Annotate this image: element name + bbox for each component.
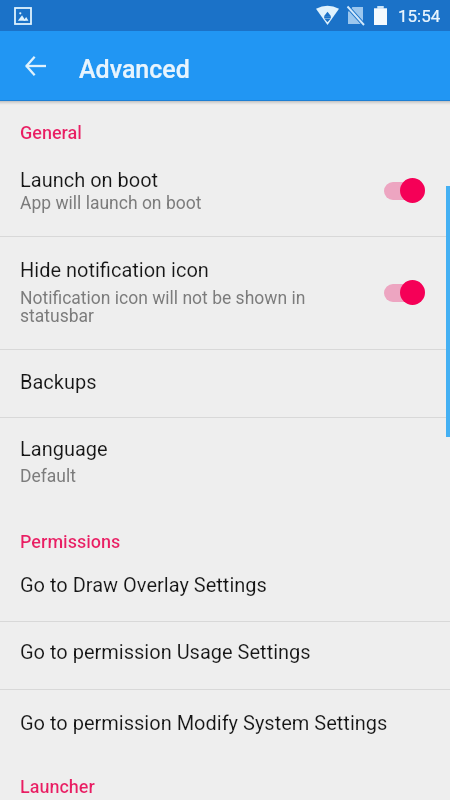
button[interactable]: Toggle <box>382 176 428 206</box>
staticText: Go to permission Usage Settings <box>20 640 311 663</box>
staticText: Backups <box>20 370 97 393</box>
button[interactable]: Toggle <box>382 278 428 308</box>
staticText: Go to permission Modify System Settings <box>20 711 388 734</box>
staticText: Permissions <box>20 531 121 552</box>
staticText: Launcher <box>20 776 95 797</box>
staticText: General <box>20 122 82 143</box>
button[interactable]: Go to permission Modify System Settings <box>0 690 450 757</box>
button[interactable]: Back <box>13 44 57 88</box>
staticText: 15:54 <box>398 6 441 26</box>
staticText: Hide notification icon <box>20 258 209 281</box>
staticText: Advanced <box>79 55 190 84</box>
staticText: Default <box>20 466 76 487</box>
button[interactable]: Language <box>0 418 450 510</box>
button[interactable]: Go to Draw Overlay Settings <box>0 556 450 621</box>
button[interactable]: Launch on boot <box>0 148 450 236</box>
staticText: Notification icon will not be shown in <box>20 288 306 309</box>
staticText: Go to Draw Overlay Settings <box>20 573 267 596</box>
staticText: Language <box>20 437 108 460</box>
staticText: Launch on boot <box>20 168 159 191</box>
staticText: App will launch on boot <box>20 193 202 214</box>
button[interactable]: Go to permission Usage Settings <box>0 622 450 689</box>
button[interactable]: Hide notification icon <box>0 237 450 349</box>
button[interactable]: Backups <box>0 350 450 417</box>
staticText: statusbar <box>20 306 94 327</box>
